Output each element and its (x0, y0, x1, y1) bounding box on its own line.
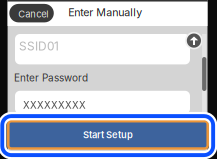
button[interactable]: Start Setup (8, 121, 208, 148)
staticText: Cancel (18, 8, 48, 20)
staticText: Enter Manually (68, 6, 142, 19)
button[interactable]: Scroll up (187, 33, 201, 48)
staticText: Start Setup (83, 129, 133, 140)
staticText: SSID01 (19, 39, 59, 53)
staticText: XXXXXXXXX (23, 99, 86, 111)
button[interactable]: Cancel (9, 4, 54, 22)
staticText: Enter Password (14, 72, 88, 84)
